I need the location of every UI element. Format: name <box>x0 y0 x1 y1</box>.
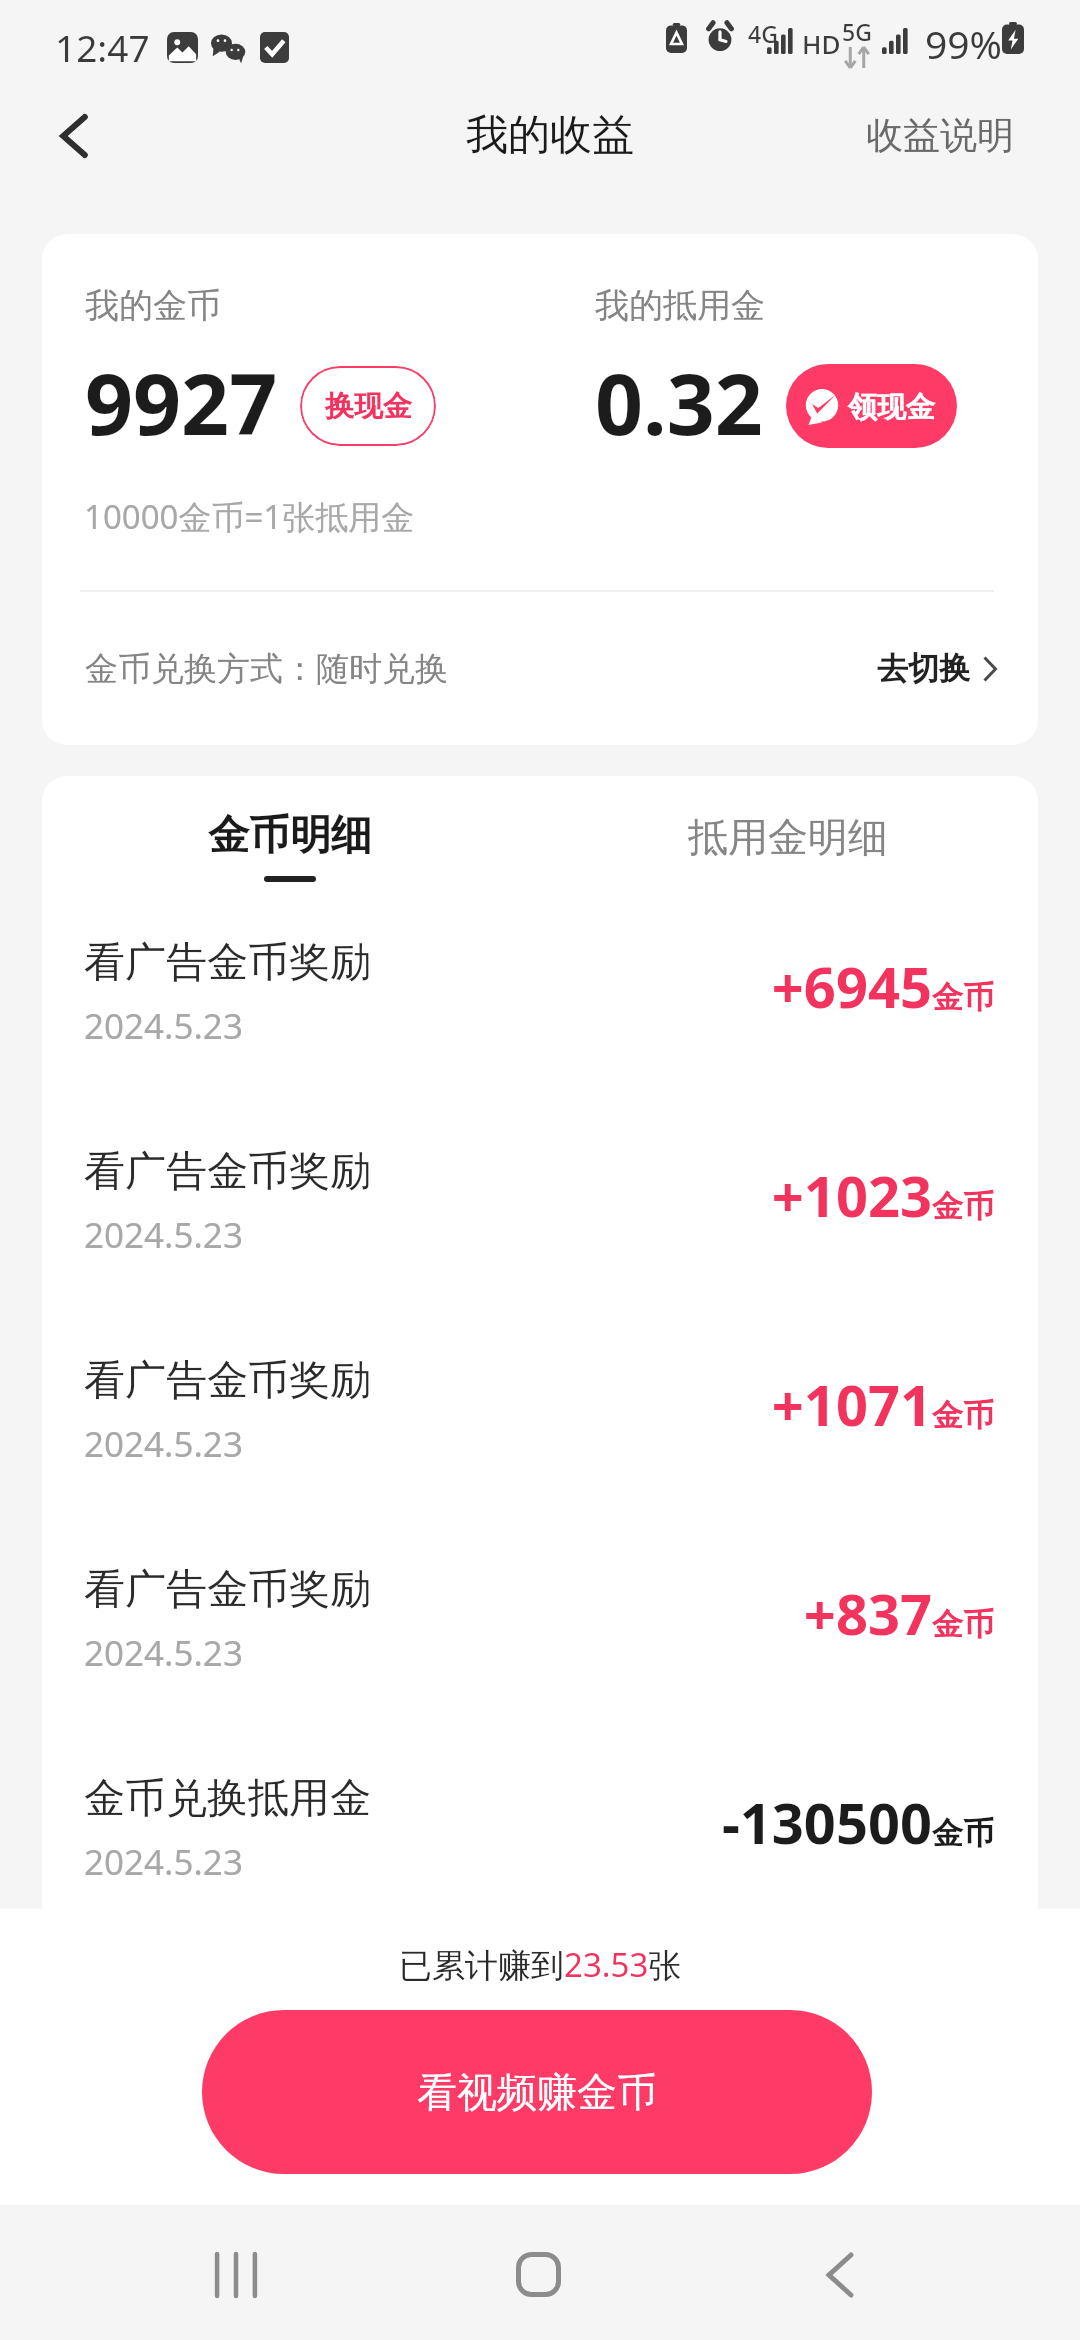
staticText: 抵用金明细 <box>688 812 888 862</box>
staticText: 4G <box>748 18 778 49</box>
staticText: 我的金币 <box>85 284 221 327</box>
staticText: +1071金币 <box>771 1366 994 1442</box>
staticText: 金币兑换抵用金 <box>84 1773 371 1825</box>
staticText: 看广告金币奖励 <box>84 1355 371 1407</box>
button[interactable]: Recents <box>136 2207 336 2340</box>
staticText: 看广告金币奖励 <box>84 1564 371 1616</box>
button[interactable]: Back <box>740 2207 940 2340</box>
staticText: 2024.5.23 <box>84 1838 243 1886</box>
staticText: HD <box>802 26 841 61</box>
staticText: 金币兑换方式：随时兑换 <box>85 648 448 690</box>
staticText: 收益说明 <box>866 112 1014 159</box>
button[interactable]: 换现金 <box>300 366 436 446</box>
staticText: 2024.5.23 <box>84 1629 243 1677</box>
button[interactable]: 金币兑换方式：随时兑换 <box>42 592 1038 745</box>
staticText: 换现金 <box>325 388 412 425</box>
staticText: 2024.5.23 <box>84 1211 243 1259</box>
button[interactable]: 看广告金币奖励 <box>42 1137 1038 1346</box>
staticText: -130500金币 <box>721 1784 994 1860</box>
staticText: 已累计赚到23.53张 <box>399 1942 682 1987</box>
button[interactable]: 看广告金币奖励 <box>42 1346 1038 1555</box>
staticText: 去切换 <box>877 649 970 688</box>
staticText: 9927 <box>85 345 278 459</box>
button[interactable]: 看广告金币奖励 <box>42 928 1038 1137</box>
staticText: 10000金币=1张抵用金 <box>84 494 415 539</box>
staticText: +6945金币 <box>771 948 994 1024</box>
button[interactable]: 抵用金明细 <box>645 786 931 896</box>
staticText: +837金币 <box>803 1575 994 1651</box>
button[interactable]: Back <box>28 92 120 180</box>
staticText: 我的抵用金 <box>595 284 765 327</box>
staticText: 领现金 <box>848 389 935 426</box>
staticText: 5G <box>842 16 872 47</box>
staticText: 0.32 <box>595 345 763 459</box>
button[interactable]: 金币明细 <box>147 786 433 896</box>
button[interactable]: 看视频赚金币 <box>202 2010 872 2174</box>
staticText: 金币明细 <box>208 810 372 862</box>
staticText: 看广告金币奖励 <box>84 937 371 989</box>
button[interactable]: 领现金 <box>786 364 957 448</box>
staticText: 99% <box>925 17 1003 70</box>
staticText: 我的收益 <box>466 109 634 162</box>
staticText: +1023金币 <box>771 1157 994 1233</box>
button[interactable]: 看广告金币奖励 <box>42 1555 1038 1764</box>
staticText: 12:47 <box>55 22 150 72</box>
staticText: 看广告金币奖励 <box>84 1146 371 1198</box>
staticText: 2024.5.23 <box>84 1420 243 1468</box>
staticText: 2024.5.23 <box>84 1002 243 1050</box>
button[interactable]: 收益说明 <box>842 90 1038 181</box>
staticText: 看视频赚金币 <box>417 2067 657 2117</box>
button[interactable]: 金币兑换抵用金 <box>42 1764 1038 1909</box>
button[interactable]: Home <box>438 2207 638 2340</box>
